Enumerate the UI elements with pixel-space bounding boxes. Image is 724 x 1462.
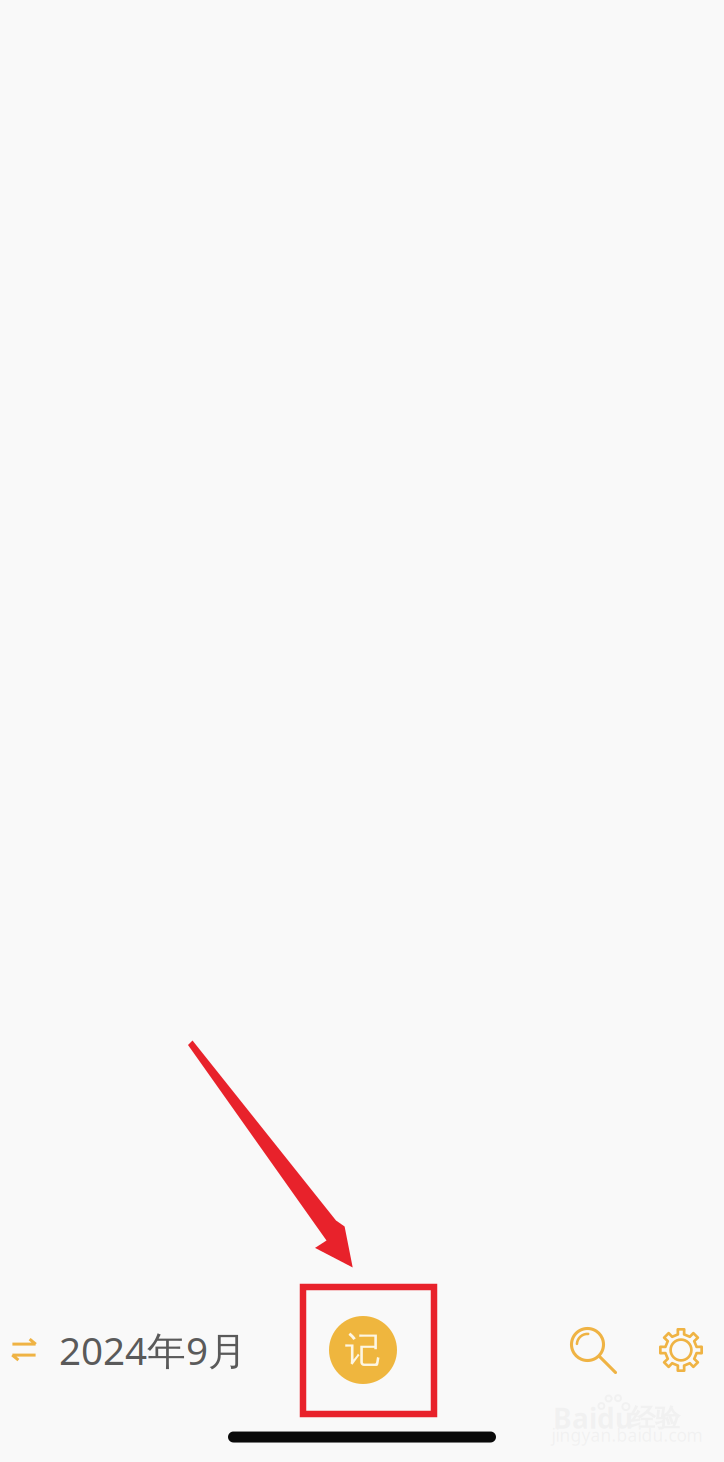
staticText: 记 (345, 1328, 381, 1372)
button[interactable]: 设置 (658, 1327, 703, 1372)
button[interactable]: 搜索 (570, 1327, 618, 1375)
staticText: jingyan.baidu.com (551, 1423, 702, 1446)
staticText: Baidu (553, 1399, 633, 1437)
staticText: 2024年9月 (59, 1324, 247, 1376)
button[interactable]: 2024年9月 (0, 1312, 248, 1388)
button[interactable]: 记账 (329, 1316, 397, 1384)
staticText: 经验 (630, 1402, 680, 1433)
